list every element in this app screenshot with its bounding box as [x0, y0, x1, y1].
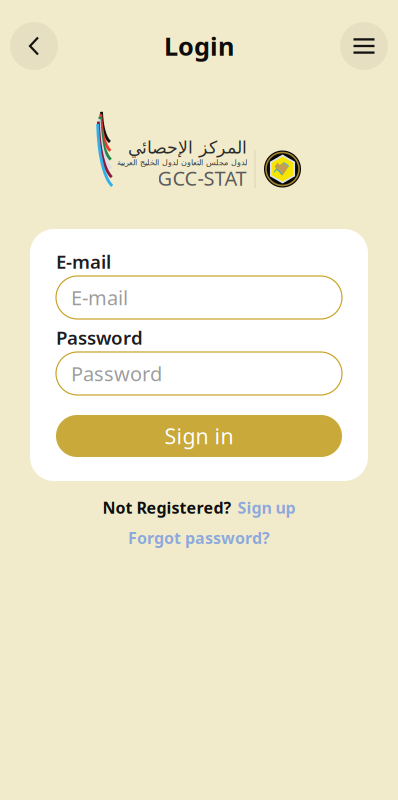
staticText: Not Registered?	[102, 497, 231, 518]
button[interactable]: Sign up	[237, 497, 295, 518]
button[interactable]: Sign in	[56, 415, 342, 457]
button[interactable]: Password	[56, 352, 342, 395]
staticText: E-mail	[71, 284, 128, 311]
staticText: Sign up	[237, 497, 295, 518]
button[interactable]: Menu	[340, 22, 388, 70]
staticText: Password	[71, 360, 162, 387]
staticText: Password	[56, 325, 143, 350]
button[interactable]: Back	[10, 22, 58, 70]
staticText: Sign in	[164, 422, 233, 450]
staticText: لدول مجلس التعاون لدول الخليج العربية	[116, 158, 246, 167]
staticText: Login	[164, 29, 234, 63]
staticText: Forgot password?	[128, 527, 270, 548]
button[interactable]: Forgot password?	[128, 527, 270, 548]
staticText: E-mail	[56, 249, 111, 274]
staticText: المركز الإحصائي	[127, 138, 246, 157]
button[interactable]: E-mail	[56, 276, 342, 319]
staticText: GCC-STAT	[157, 165, 246, 191]
